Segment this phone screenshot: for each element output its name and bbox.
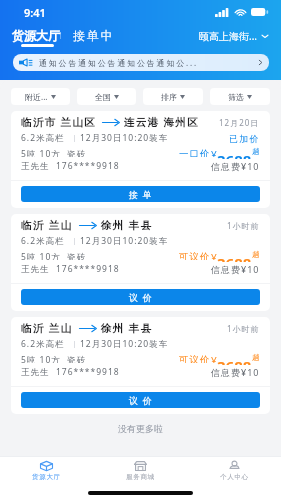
button[interactable]: 附近... xyxy=(11,88,70,105)
staticText: 议 价 xyxy=(129,394,152,406)
button[interactable]: 通知公告通知公告通知公告通知公... xyxy=(13,54,269,71)
staticText: 一口价 xyxy=(179,148,211,157)
staticText: 信息费¥10 xyxy=(211,160,260,172)
staticText: 议 价 xyxy=(129,291,152,303)
button[interactable]: 颐高上海街... xyxy=(199,29,269,43)
staticText: 6.2米高栏 xyxy=(21,338,65,350)
button[interactable]: 议 价 xyxy=(21,289,260,305)
button[interactable]: 临沂 兰山 xyxy=(11,214,270,311)
staticText: 趟 xyxy=(252,147,260,156)
button[interactable]: 个人中心 xyxy=(187,457,281,485)
button[interactable]: 服务商城 xyxy=(93,457,187,485)
staticText: 排序 xyxy=(161,92,177,102)
button[interactable]: 临沂 兰山 xyxy=(11,317,270,414)
staticText: 王先生 176****9918 xyxy=(21,366,120,378)
staticText: 连云港 海州区 xyxy=(124,115,199,129)
staticText: 王先生 176****9918 xyxy=(21,263,120,275)
staticText: 临沂市 兰山区 xyxy=(21,115,96,129)
staticText: 王先生 176****9918 xyxy=(21,160,120,172)
staticText: 可议价 xyxy=(179,251,211,260)
button[interactable]: 全国 xyxy=(77,88,136,105)
staticText: 没有更多啦 xyxy=(118,423,163,434)
staticText: 可议价 xyxy=(179,354,211,363)
staticText: 6.2米高栏 xyxy=(21,132,65,144)
staticText: 信息费¥10 xyxy=(211,263,260,275)
staticText: 5吨 10方 瓷砖 xyxy=(21,354,87,363)
staticText: 接 单 xyxy=(129,188,152,200)
staticText: 徐州 丰县 xyxy=(101,321,153,335)
button[interactable]: 议 价 xyxy=(21,392,260,408)
staticText: 12月30日10:20装车 xyxy=(80,338,169,350)
staticText: 附近... xyxy=(25,91,48,102)
staticText: 1小时前 xyxy=(227,323,260,334)
staticText: 已加价 xyxy=(229,133,260,144)
staticText: 3688 xyxy=(217,150,252,159)
staticText: 12月30日10:20装车 xyxy=(80,235,169,247)
staticText: 筛选 xyxy=(228,92,244,102)
staticText: 12月20日 xyxy=(219,117,260,128)
button[interactable]: 临沂市 兰山区 xyxy=(11,111,270,208)
staticText: 颐高上海街... xyxy=(199,29,258,43)
staticText: 3688 xyxy=(217,356,252,365)
staticText: 通知公告通知公告通知公告通知公... xyxy=(39,57,253,68)
button[interactable]: 货源大厅 xyxy=(0,457,93,485)
button[interactable]: 接 单 xyxy=(21,186,260,202)
staticText: 12月30日10:20装车 xyxy=(80,132,169,144)
staticText: 服务商城 xyxy=(126,473,155,481)
staticText: ¥ xyxy=(211,354,217,363)
staticText: 5吨 10方 瓷砖 xyxy=(21,251,87,260)
staticText: 9:41 xyxy=(24,5,46,20)
staticText: 信息费¥10 xyxy=(211,366,260,378)
staticText: 货源大厅 xyxy=(32,473,61,481)
button[interactable]: 排序 xyxy=(143,88,203,105)
staticText: 趟 xyxy=(252,250,260,259)
staticText: 接单中 xyxy=(73,28,115,43)
staticText: 货源大厅 xyxy=(12,28,60,43)
staticText: 趟 xyxy=(252,353,260,362)
staticText: 个人中心 xyxy=(220,473,249,481)
button[interactable]: 筛选 xyxy=(210,88,270,105)
staticText: 3688 xyxy=(217,253,252,262)
staticText: ¥ xyxy=(211,251,217,260)
staticText: 临沂 兰山 xyxy=(21,218,73,232)
staticText: 临沂 兰山 xyxy=(21,321,73,335)
staticText: 徐州 丰县 xyxy=(101,218,153,232)
staticText: 全国 xyxy=(95,92,111,102)
staticText: 5吨 10方 瓷砖 xyxy=(21,148,87,157)
button[interactable]: 接单中 xyxy=(73,28,115,43)
staticText: ¥ xyxy=(211,148,217,157)
staticText: 1小时前 xyxy=(227,220,260,231)
button[interactable]: 货源大厅 xyxy=(12,28,60,43)
staticText: 6.2米高栏 xyxy=(21,235,65,247)
